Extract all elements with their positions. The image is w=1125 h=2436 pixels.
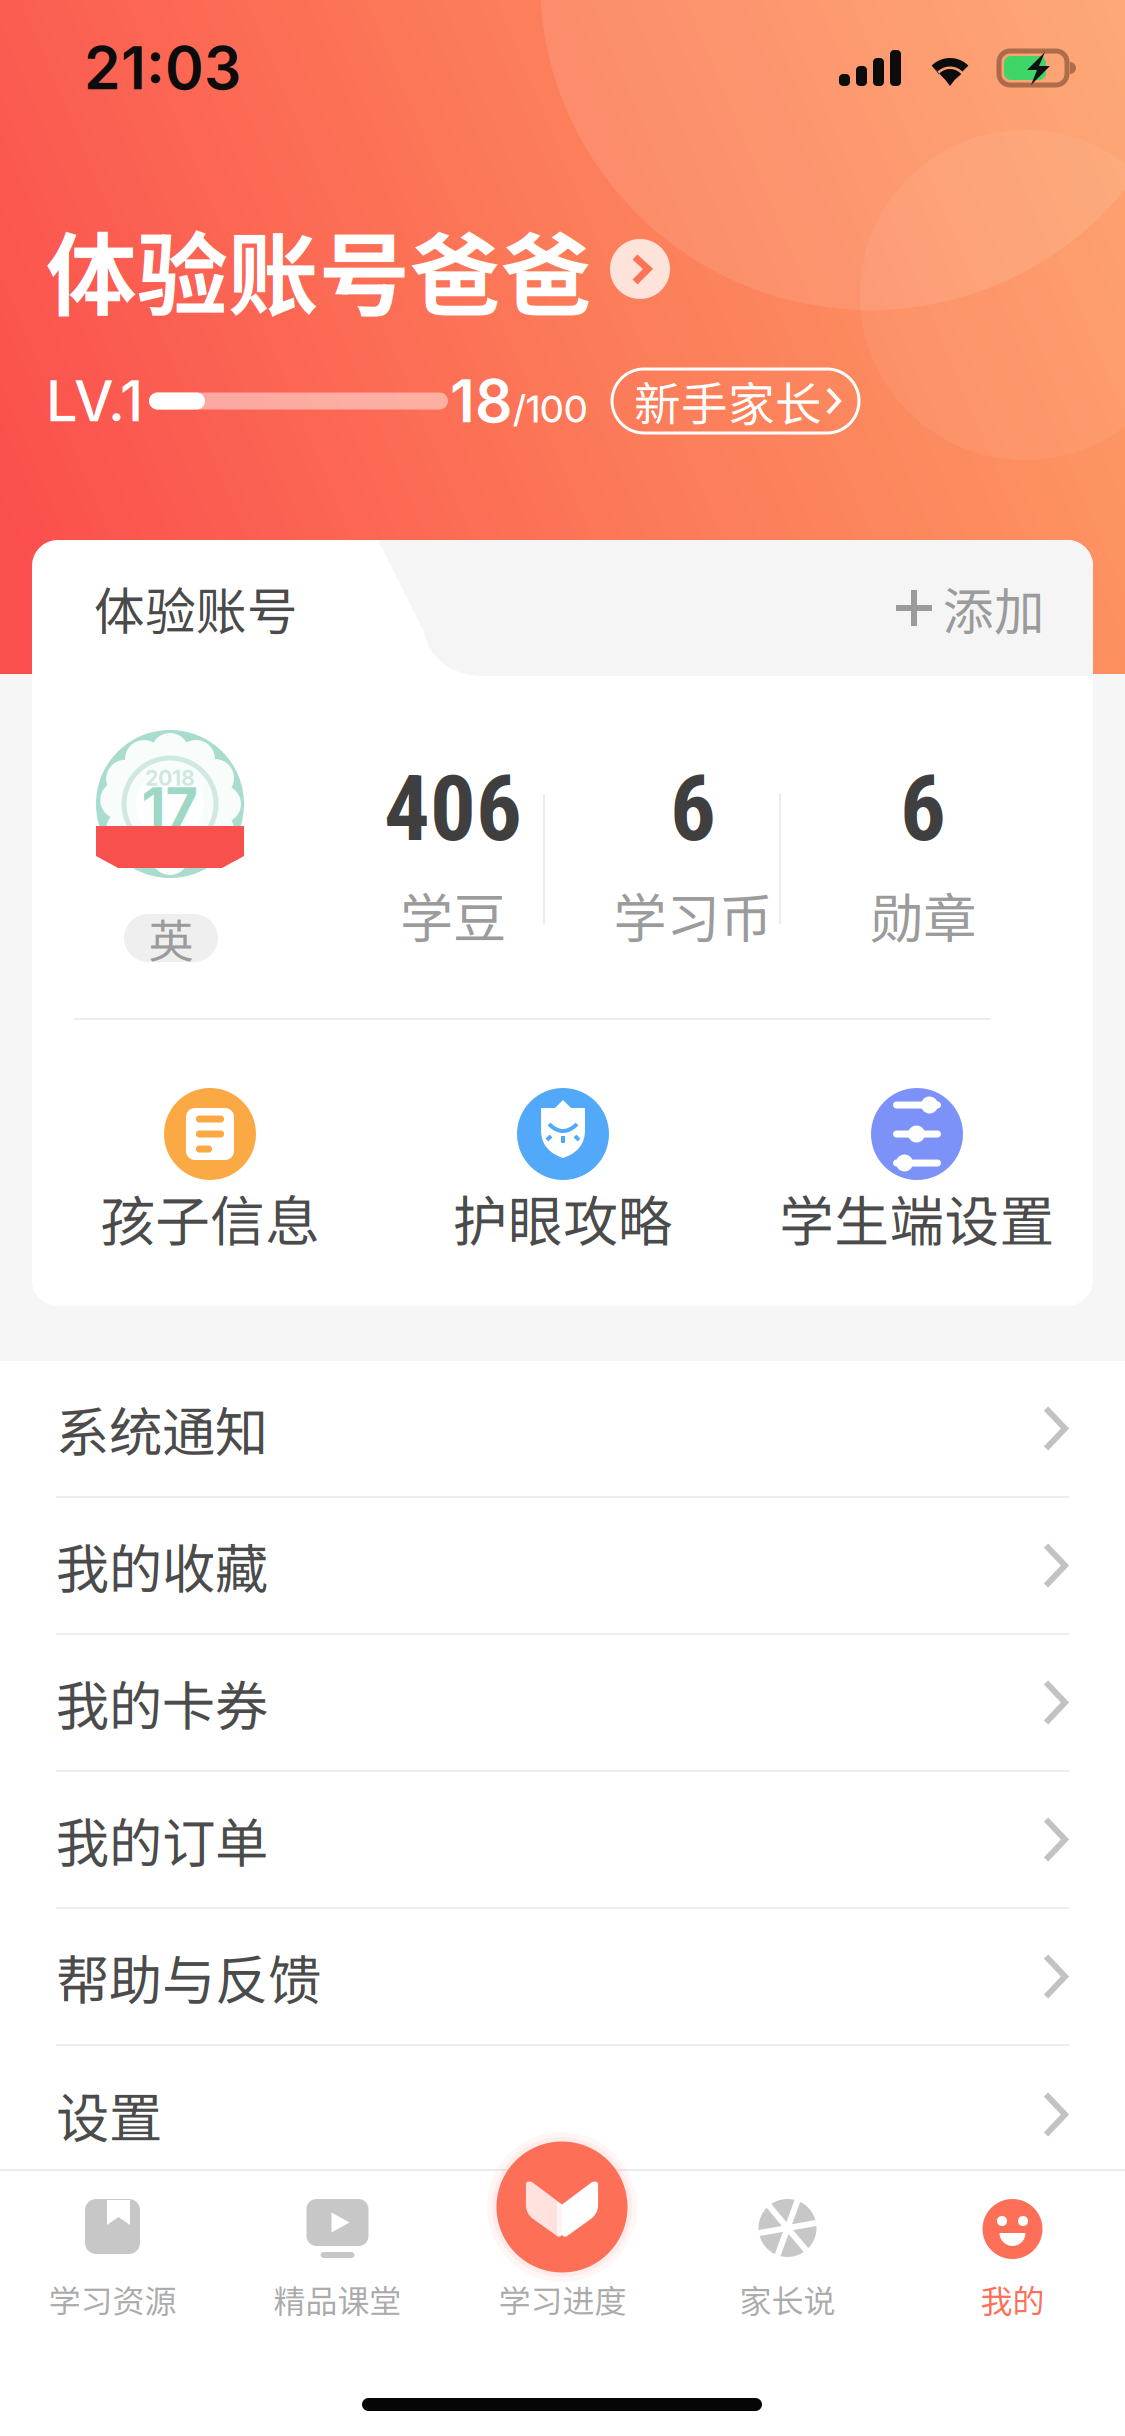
button[interactable]: 设置 <box>0 2046 1125 2183</box>
staticText: 新手家长 <box>634 367 822 435</box>
staticText: 护眼攻略 <box>453 1178 673 1257</box>
button[interactable]: 学习资源 <box>0 2171 225 2357</box>
button[interactable]: 帮助与反馈 <box>0 1909 1125 2046</box>
button[interactable]: 新手家长 <box>612 369 859 433</box>
staticText: 我的 <box>980 2276 1044 2322</box>
staticText: 406 <box>384 756 522 862</box>
staticText: 精品课堂 <box>273 2276 401 2322</box>
staticText: 学习币 <box>613 876 772 953</box>
staticText: 学习进度 <box>498 2276 626 2322</box>
button[interactable]: 孩子信息 <box>63 1088 357 1260</box>
button[interactable]: 体验账号 <box>32 540 414 676</box>
staticText: 2018 <box>145 765 195 791</box>
button[interactable]: 我的 <box>900 2171 1125 2357</box>
staticText: 家长说 <box>739 2276 835 2322</box>
staticText: 体验账号 <box>94 571 298 645</box>
staticText: 我的订单 <box>56 1801 268 1878</box>
staticText: 体验账号爸爸 <box>46 203 592 335</box>
button[interactable]: 学生端设置 <box>770 1088 1064 1260</box>
staticText: LV.1 <box>46 367 143 435</box>
staticText: 孩子信息 <box>100 1178 320 1257</box>
staticText: 系统通知 <box>56 1390 268 1467</box>
staticText: 学豆 <box>400 876 506 953</box>
button[interactable]: 我的卡券 <box>0 1635 1125 1772</box>
staticText: /100 <box>513 386 588 431</box>
button[interactable]: 添加 <box>850 540 1090 676</box>
button[interactable]: 学习进度 <box>450 2171 675 2357</box>
button[interactable]: 护眼攻略 <box>416 1088 710 1260</box>
staticText: 17 <box>141 774 198 842</box>
button[interactable]: 精品课堂 <box>225 2171 450 2357</box>
staticText: 6 <box>670 756 716 862</box>
staticText: 学习资源 <box>48 2276 176 2322</box>
staticText: 英 <box>148 905 193 971</box>
staticText: 勋章 <box>870 876 976 953</box>
staticText: 21:03 <box>84 32 241 103</box>
button[interactable]: 体验账号爸爸 <box>0 217 1125 321</box>
button[interactable]: 家长说 <box>675 2171 900 2357</box>
staticText: 帮助与反馈 <box>56 1938 321 2015</box>
staticText: 设置 <box>56 2076 162 2153</box>
staticText: 我的收藏 <box>56 1527 268 1604</box>
button[interactable]: 我的收藏 <box>0 1498 1125 1635</box>
staticText: 我的卡券 <box>56 1664 268 1741</box>
staticText: 学生端设置 <box>779 1178 1054 1257</box>
staticText: 18 <box>450 365 513 436</box>
button[interactable]: 我的订单 <box>0 1772 1125 1909</box>
button[interactable]: 系统通知 <box>0 1361 1125 1498</box>
staticText: 6 <box>900 756 946 862</box>
staticText: 添加 <box>943 571 1045 645</box>
